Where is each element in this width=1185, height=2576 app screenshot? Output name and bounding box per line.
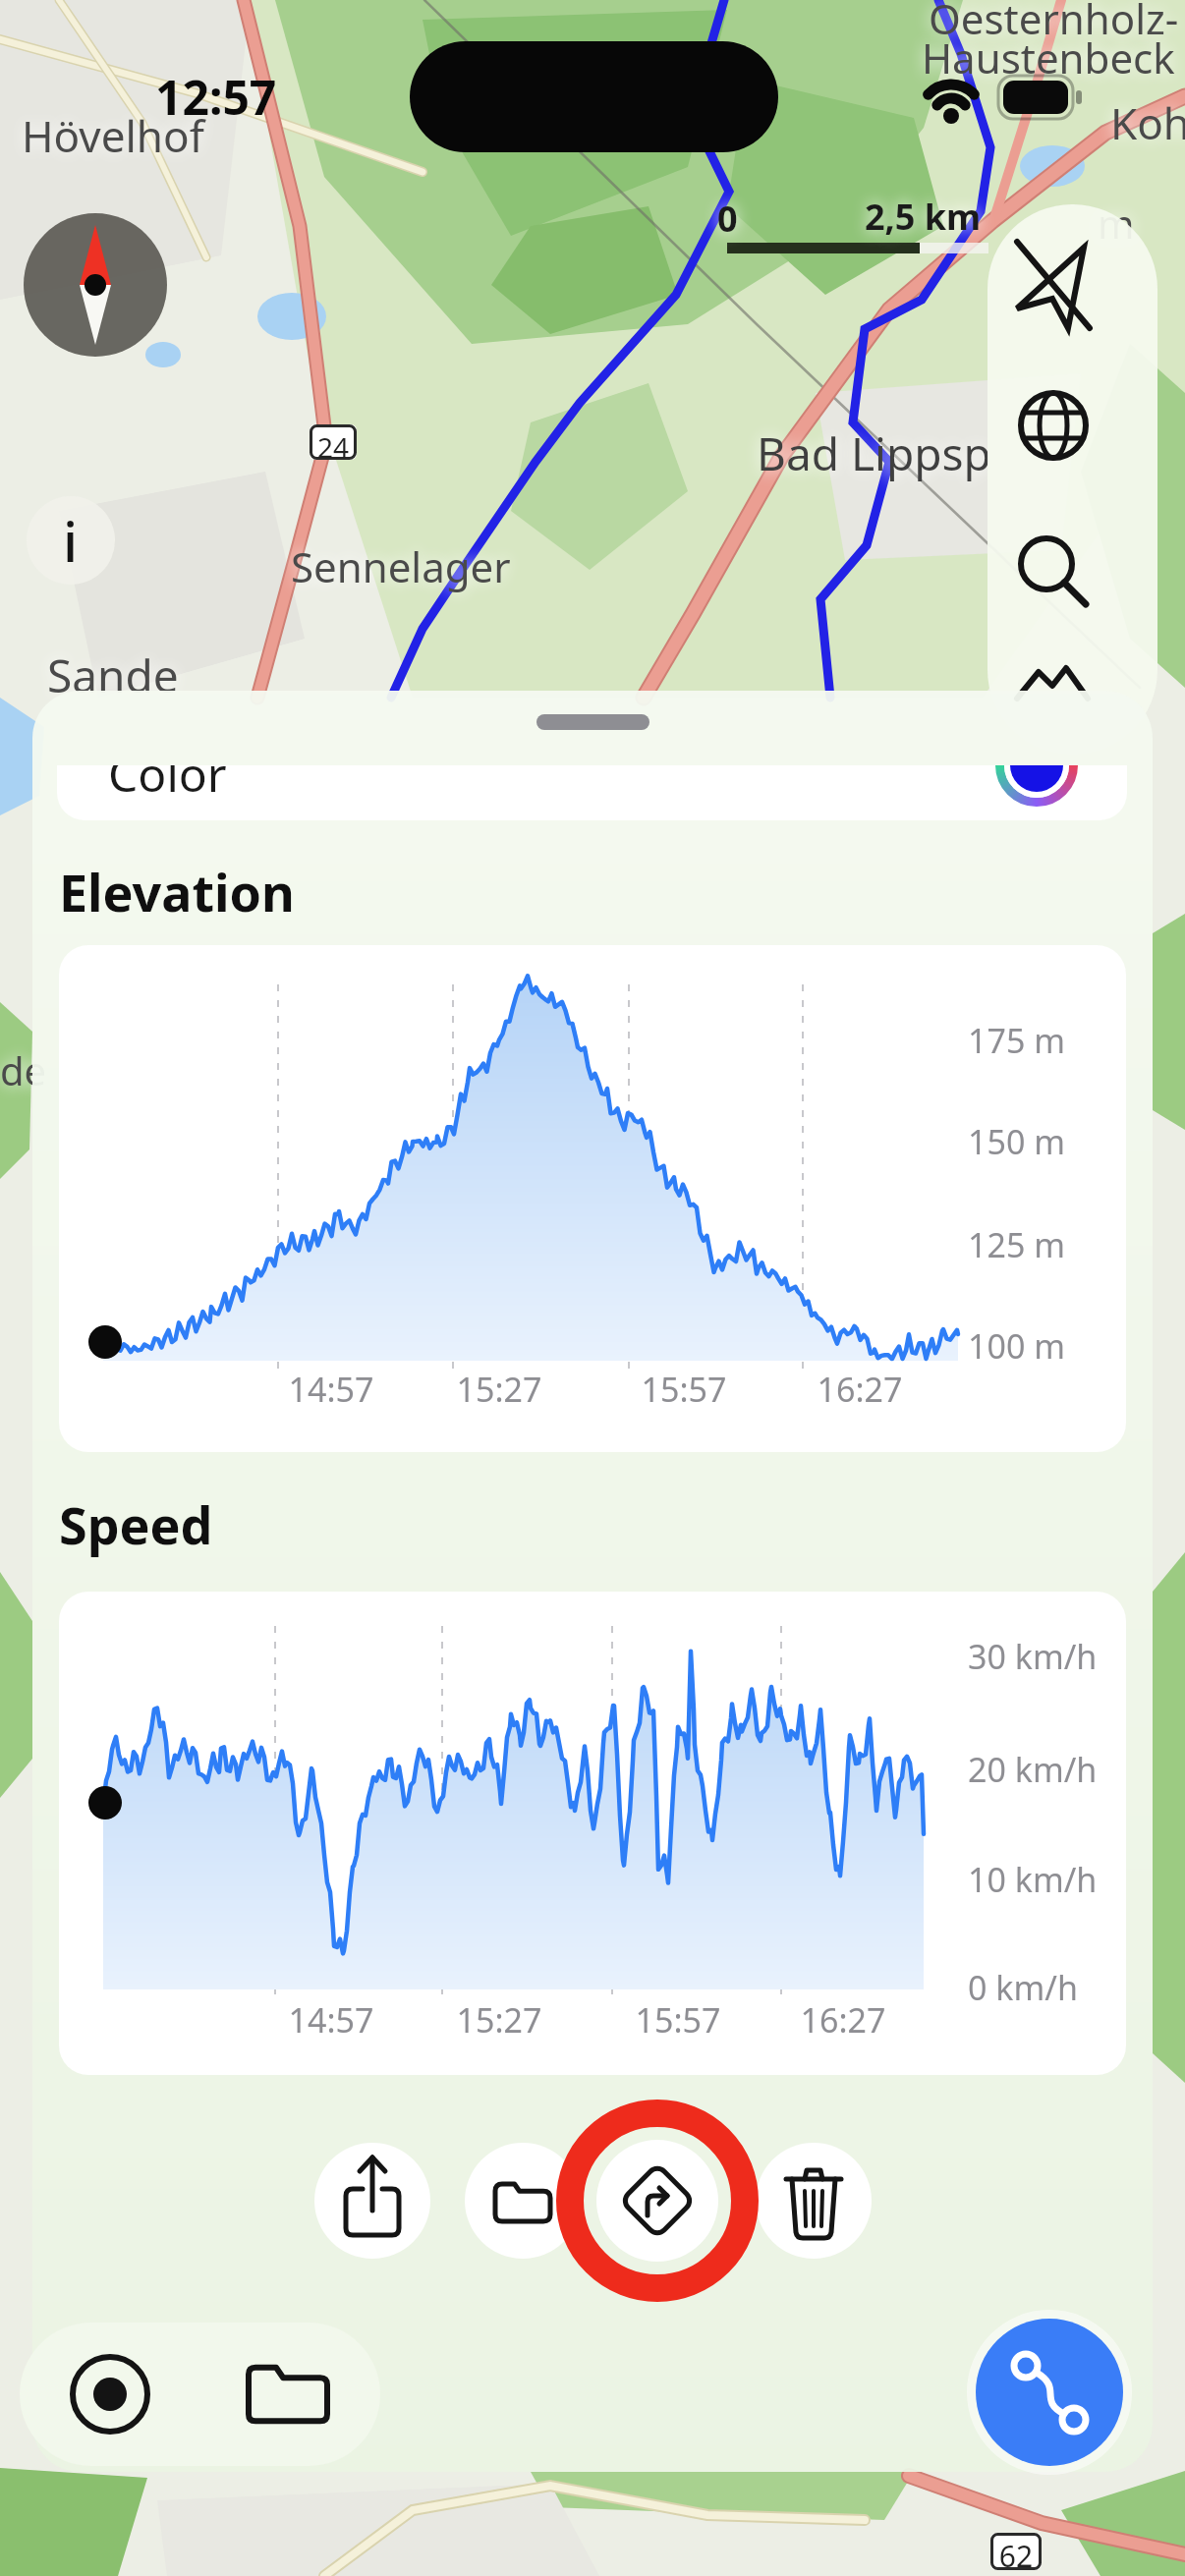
button[interactable] — [997, 226, 1145, 334]
button[interactable] — [465, 2143, 581, 2259]
staticText: 15:57 — [605, 1367, 762, 1412]
button[interactable] — [314, 2143, 430, 2259]
staticText: Color — [108, 765, 227, 797]
staticText: 15:27 — [421, 1997, 578, 2043]
staticText: 24 — [310, 428, 357, 466]
staticText: i — [63, 503, 79, 578]
staticText: 0 km/h — [968, 1965, 1078, 2010]
staticText: Speed — [59, 1489, 213, 1559]
button[interactable] — [39, 2332, 177, 2456]
staticText: 14:57 — [253, 1997, 410, 2043]
button[interactable] — [756, 2143, 872, 2259]
staticText: 20 km/h — [968, 1747, 1098, 1792]
staticText: 16:27 — [781, 1367, 938, 1412]
staticText: 16:27 — [764, 1997, 922, 2043]
staticText: Sande — [47, 644, 179, 706]
staticText: 62 — [990, 2536, 1042, 2576]
staticText: 0 — [717, 195, 738, 243]
staticText: Haustenbeck — [922, 29, 1175, 85]
staticText: 15:57 — [599, 1997, 757, 2043]
button[interactable] — [24, 213, 167, 357]
staticText: Elevation — [59, 857, 295, 926]
button[interactable] — [997, 521, 1145, 629]
staticText: 2,5 km — [865, 193, 982, 241]
staticText: Sennelager — [291, 538, 511, 594]
staticText: m — [1098, 196, 1135, 250]
button[interactable] — [211, 2332, 359, 2456]
button[interactable]: i — [27, 496, 115, 585]
staticText: Hövelhof — [22, 106, 204, 165]
button[interactable] — [976, 2319, 1123, 2466]
staticText: Koh — [1110, 93, 1185, 152]
staticText: 125 m — [968, 1222, 1065, 1267]
staticText: 150 m — [968, 1119, 1065, 1164]
staticText: 175 m — [968, 1018, 1065, 1063]
staticText: Bad Lippsp — [757, 422, 991, 484]
staticText: 15:27 — [421, 1367, 578, 1412]
button[interactable] — [556, 2100, 759, 2302]
staticText: 100 m — [968, 1323, 1065, 1369]
staticText: 12:57 — [155, 65, 277, 129]
button[interactable]: Color — [57, 765, 1127, 820]
staticText: 14:57 — [253, 1367, 410, 1412]
staticText: 10 km/h — [968, 1857, 1098, 1902]
staticText: 30 km/h — [968, 1634, 1098, 1679]
staticText: de — [0, 1043, 47, 1096]
staticText: Oesternholz- — [929, 0, 1179, 46]
button[interactable] — [997, 373, 1145, 481]
